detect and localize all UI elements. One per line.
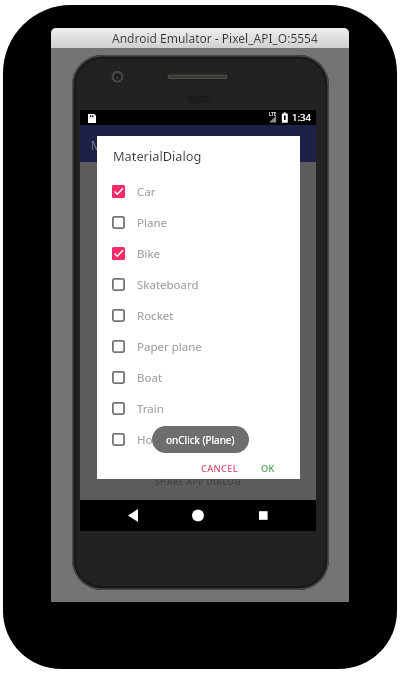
staticText: Plane <box>137 215 167 231</box>
button[interactable]: CANCEL <box>193 457 246 479</box>
button[interactable]: Train <box>97 393 300 424</box>
staticText: Boat <box>137 370 163 386</box>
button[interactable]: OK <box>253 457 283 479</box>
button[interactable]: Plane <box>97 207 300 238</box>
staticText: Train <box>137 401 164 417</box>
button[interactable]: Paper plane <box>97 331 300 362</box>
button[interactable]: Hoverboard <box>97 424 300 455</box>
staticText: CANCEL <box>201 462 238 474</box>
staticText: Car <box>137 184 156 200</box>
staticText: Bike <box>137 246 161 262</box>
staticText: LTE <box>269 111 277 117</box>
staticText: SHARE APP DIALOG <box>155 476 242 487</box>
button[interactable]: Bike <box>97 238 300 269</box>
staticText: MaterialDialog <box>113 147 202 164</box>
button[interactable]: Car <box>97 176 300 207</box>
staticText: MaterialDialog <box>91 137 176 154</box>
button[interactable]: Back <box>120 500 156 531</box>
button[interactable]: Home <box>180 500 216 531</box>
button[interactable]: Skateboard <box>97 269 300 300</box>
button[interactable]: Boat <box>97 362 300 393</box>
staticText: 1:34 <box>292 111 311 124</box>
staticText: Hoverboard <box>137 432 202 448</box>
staticText: Android Emulator - Pixel_API_O:5554 <box>112 30 318 46</box>
button[interactable]: Recent apps <box>245 500 281 531</box>
staticText: Skateboard <box>137 277 199 293</box>
staticText: Rocket <box>137 308 174 324</box>
button[interactable]: Rocket <box>97 300 300 331</box>
staticText: Paper plane <box>137 339 202 355</box>
staticText: onClick (Plane) <box>166 433 235 447</box>
staticText: OK <box>261 462 275 474</box>
